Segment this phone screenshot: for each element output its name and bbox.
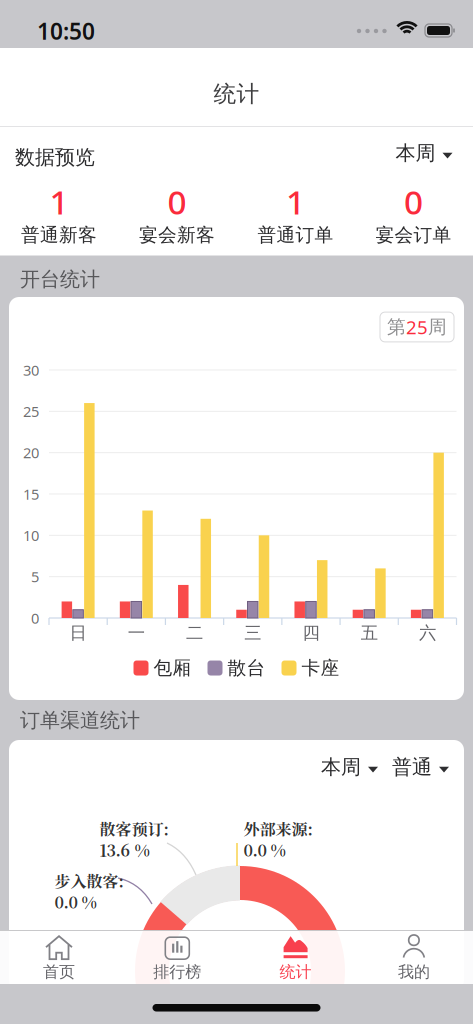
staticText: 散客预订: [99,817,168,840]
staticText: 1 [49,179,68,224]
button[interactable]: 本周 [321,755,378,779]
staticText: 1 [286,179,305,224]
staticText: 宴会订单 [375,224,451,247]
staticText: 我的 [398,962,430,982]
staticText: 散台 [227,656,265,679]
staticText: 13.6 % [99,838,149,861]
staticText: 0 [404,179,423,224]
staticText: 0.0 % [243,838,285,861]
staticText: 0.0 % [54,890,96,913]
button[interactable]: 普通 [392,755,449,779]
staticText: 统计 [213,80,259,108]
staticText: 10 [23,526,39,545]
staticText: 10:50 [37,16,95,46]
staticText: 本周 [321,755,361,779]
staticText: 二 [186,622,203,644]
staticText: 包厢 [153,656,191,679]
button[interactable]: 首页 [14,933,104,985]
staticText: 一 [128,622,145,644]
button[interactable]: 排行榜 [132,933,222,985]
staticText: 统计 [280,962,312,982]
staticText: 普通新客 [21,224,97,247]
staticText: 首页 [43,962,75,982]
button[interactable]: 本周 [395,141,452,165]
button[interactable]: 统计 [251,933,341,985]
button[interactable]: 第 [380,312,454,342]
staticText: 本周 [395,141,435,165]
staticText: 0 [167,179,186,224]
staticText: 周 [428,315,447,338]
staticText: 卡座 [301,656,339,679]
staticText: 25 [406,315,428,339]
button[interactable]: 我的 [369,933,459,985]
staticText: 六 [419,622,436,644]
staticText: 15 [23,484,39,504]
staticText: 25 [23,402,39,421]
staticText: 数据预览 [15,145,95,170]
staticText: 开台统计 [20,267,100,292]
staticText: 订单渠道统计 [20,708,140,733]
staticText: 四 [302,622,319,644]
staticText: 0 [31,608,39,628]
staticText: 宴会新客 [139,224,215,247]
staticText: 第 [387,315,406,338]
staticText: 普通订单 [257,224,333,247]
staticText: 五 [361,622,378,644]
staticText: 日 [70,622,87,644]
staticText: 30 [23,360,39,380]
staticText: 外部来源: [243,817,312,840]
staticText: 普通 [392,755,432,779]
staticText: 20 [23,443,39,462]
staticText: 5 [31,567,39,586]
staticText: 排行榜 [153,962,201,982]
staticText: 三 [244,622,261,644]
staticText: 步入散客: [54,869,123,892]
